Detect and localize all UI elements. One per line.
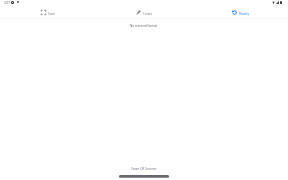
staticText: Smart QR Scanner [131,167,157,171]
staticText: 3:07 [4,1,11,5]
other: History [232,10,237,15]
button[interactable]: Scan [40,8,56,17]
staticText: History [239,12,250,16]
button[interactable]: Create [135,8,154,17]
other: Create [136,10,141,15]
button[interactable]: History [231,8,251,17]
staticText: Scan [48,12,55,16]
staticText: Create [143,12,153,16]
other: Scan [41,10,46,15]
staticText: No scanned format [130,24,158,28]
